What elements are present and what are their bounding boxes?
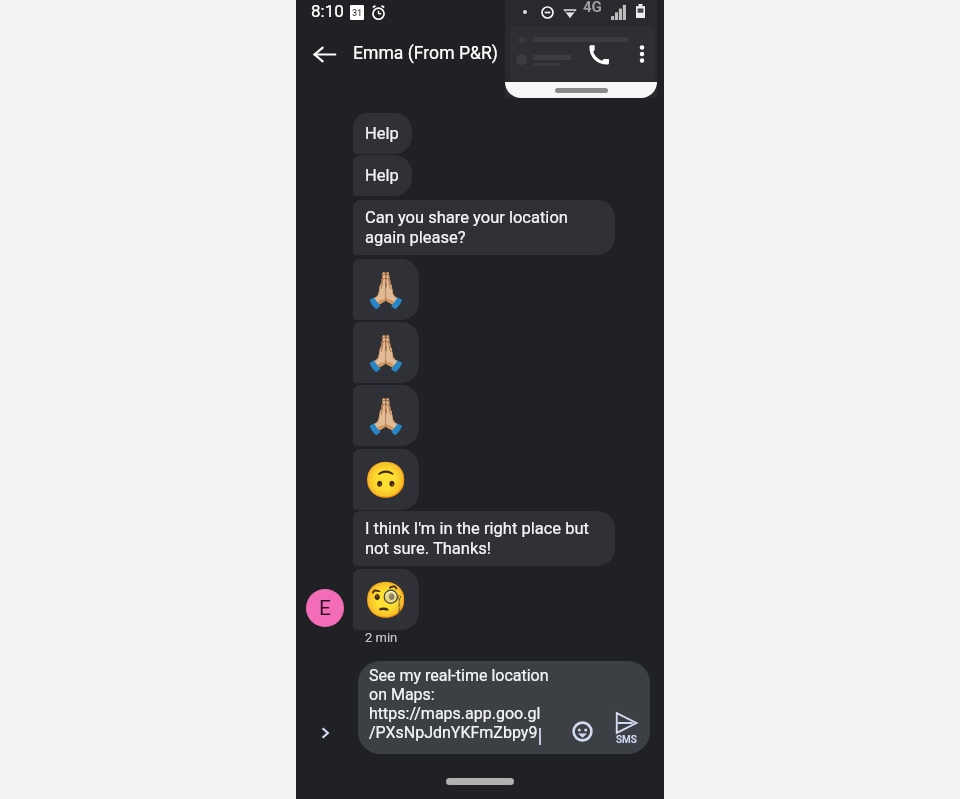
button[interactable]: Call xyxy=(583,38,615,70)
button[interactable]: Help xyxy=(353,155,412,196)
staticText: 🙏🏼 xyxy=(364,333,408,374)
button[interactable]: Send SMS xyxy=(606,712,646,754)
button[interactable]: More options xyxy=(628,40,656,68)
staticText: 8:10 xyxy=(311,1,344,21)
staticText: I think I'm in the right place but not s… xyxy=(365,519,589,558)
staticText: 31 xyxy=(352,8,363,19)
staticText: 🙏🏼 xyxy=(364,270,408,311)
staticText: Help xyxy=(365,124,399,143)
button[interactable]: 🙃 xyxy=(353,449,419,510)
button[interactable]: Help xyxy=(353,113,412,154)
button[interactable]: 🙏🏼 xyxy=(353,385,419,446)
staticText: Can you share your location again please… xyxy=(365,208,568,247)
button[interactable]: 🧐 xyxy=(353,569,419,630)
staticText: See my real-time location on Maps: https… xyxy=(369,666,549,742)
button[interactable]: I think I'm in the right place but not s… xyxy=(353,511,615,566)
button[interactable]: 🙏🏼 xyxy=(353,322,419,383)
staticText: 🙏🏼 xyxy=(364,396,408,437)
button[interactable]: Emoji xyxy=(565,714,599,748)
staticText: 🧐 xyxy=(364,580,408,621)
button[interactable]: Back xyxy=(308,38,340,70)
button[interactable]: E xyxy=(306,589,344,627)
button[interactable]: Can you share your location again please… xyxy=(353,200,615,255)
staticText: 🙃 xyxy=(364,460,408,501)
button[interactable]: 🙏🏼 xyxy=(353,259,419,320)
staticText: Help xyxy=(365,166,399,185)
staticText: SMS xyxy=(616,734,637,746)
button[interactable]: Expand xyxy=(310,718,340,748)
staticText: 4G xyxy=(583,0,602,16)
staticText: Emma (From P&R) xyxy=(353,43,498,64)
staticText: E xyxy=(319,596,331,621)
staticText: 2 min xyxy=(365,630,398,645)
button[interactable]: Notification overlay xyxy=(505,0,657,98)
